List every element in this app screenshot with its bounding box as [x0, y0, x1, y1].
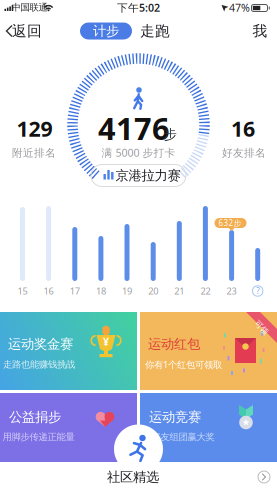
staticText: 京港拉力赛	[115, 167, 180, 184]
button[interactable]: 社区精选	[73, 463, 193, 491]
button[interactable]: 走跑	[137, 19, 173, 43]
staticText: 用脚步传递正能量	[2, 431, 74, 443]
staticText: 社区精选	[107, 469, 159, 485]
button[interactable]: 我	[248, 19, 272, 43]
staticText: 17	[70, 285, 80, 297]
staticText: 步	[163, 126, 176, 143]
staticText: 走路也能赚钱挑战	[3, 359, 75, 370]
staticText: 和好友组团赢大奖	[142, 431, 214, 443]
staticText: 返回	[12, 22, 42, 40]
staticText: 16	[44, 285, 54, 297]
staticText: 附近排名	[12, 146, 56, 159]
staticText: 可领	[253, 323, 269, 332]
staticText: 15	[17, 285, 27, 297]
staticText: 运动竞赛	[149, 409, 201, 425]
staticText: 632步	[218, 218, 241, 228]
staticText: 18	[96, 285, 106, 297]
staticText: 我	[252, 22, 267, 40]
button[interactable]: 运动奖金赛	[0, 312, 137, 390]
button[interactable]: 返回	[1, 16, 45, 46]
staticText: 计步	[93, 23, 119, 39]
staticText: 20	[148, 285, 158, 297]
staticText: 运动奖金赛	[8, 336, 73, 352]
staticText: ?	[256, 286, 259, 296]
staticText: 满 5000 步打卡	[101, 145, 175, 160]
staticText: 走跑	[140, 22, 170, 40]
staticText: 好友排名	[222, 146, 266, 159]
staticText: 公益捐步	[9, 409, 61, 425]
staticText: 22	[200, 285, 210, 297]
staticText: 4176	[98, 108, 170, 148]
staticText: 中国联通	[11, 2, 47, 13]
staticText: 下午5:02	[117, 0, 160, 15]
staticText: ¥	[103, 334, 109, 349]
button[interactable]: 公益捐步	[0, 393, 137, 462]
staticText: 19	[122, 285, 132, 297]
button[interactable]: 运动竞赛	[140, 393, 277, 462]
staticText: 21	[174, 285, 184, 297]
staticText: 运动红包	[148, 336, 200, 352]
button[interactable]: 计步	[80, 22, 132, 39]
staticText: 你有1个红包可领取	[145, 358, 222, 371]
button[interactable]: 运动红包	[140, 312, 277, 390]
button[interactable]	[114, 424, 163, 473]
button[interactable]: 京港拉力赛	[90, 164, 186, 187]
staticText: 23	[227, 285, 237, 297]
staticText: 16	[231, 114, 255, 143]
staticText: 47%	[229, 0, 250, 15]
staticText: 129	[16, 114, 52, 143]
